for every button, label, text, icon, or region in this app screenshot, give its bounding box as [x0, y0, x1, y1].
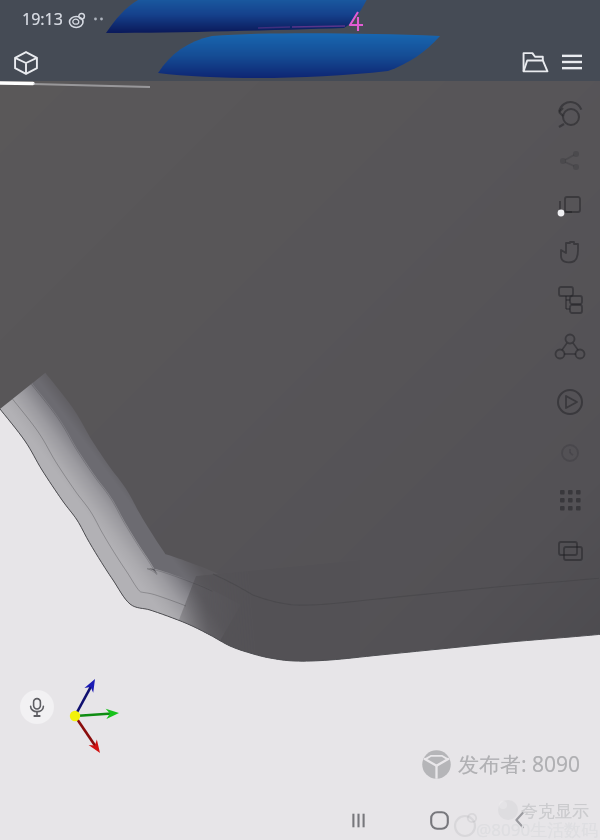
- button[interactable]: Home: [419, 800, 459, 840]
- staticText: 夸克显示: [521, 801, 589, 822]
- staticText: 发布者: 8090: [458, 750, 581, 779]
- staticText: 19:13: [22, 8, 63, 30]
- staticText: @8090生活数码: [476, 818, 599, 840]
- button[interactable]: Open folder: [513, 40, 557, 84]
- button[interactable]: 3D model: [4, 41, 47, 84]
- button[interactable]: Menu: [550, 40, 594, 84]
- button[interactable]: Voice: [20, 690, 54, 724]
- button[interactable]: Recents: [338, 800, 378, 840]
- button[interactable]: Back: [500, 800, 540, 840]
